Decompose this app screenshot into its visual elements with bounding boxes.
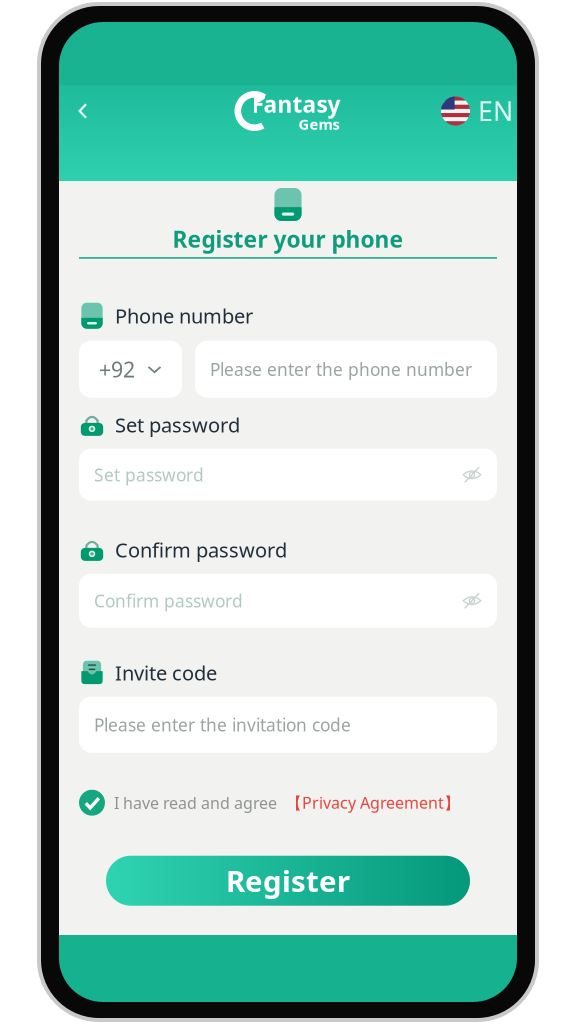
staticText: EN <box>478 93 513 129</box>
staticText: Register <box>226 861 350 900</box>
button[interactable]: Back <box>63 89 103 133</box>
staticText: Register your phone <box>172 224 403 254</box>
staticText: Gems <box>298 114 339 134</box>
staticText: Invite code <box>115 659 217 686</box>
button[interactable]: EN <box>441 89 517 133</box>
staticText: Confirm password <box>94 589 243 612</box>
staticText: Confirm password <box>115 536 287 563</box>
staticText: 【Privacy Agreement】 <box>286 792 460 813</box>
staticText: Set password <box>94 463 204 486</box>
button[interactable]: +92 <box>79 341 182 398</box>
staticText: +92 <box>99 355 135 383</box>
staticText: Phone number <box>115 302 253 329</box>
staticText: Please enter the invitation code <box>94 713 351 736</box>
button[interactable]: I have read and agree <box>79 789 497 817</box>
staticText: Fantasy <box>251 89 340 119</box>
staticText: Set password <box>115 411 240 438</box>
staticText: I have read and agree <box>114 792 277 813</box>
button[interactable]: Register <box>106 856 470 906</box>
staticText: Please enter the phone number <box>210 358 472 381</box>
